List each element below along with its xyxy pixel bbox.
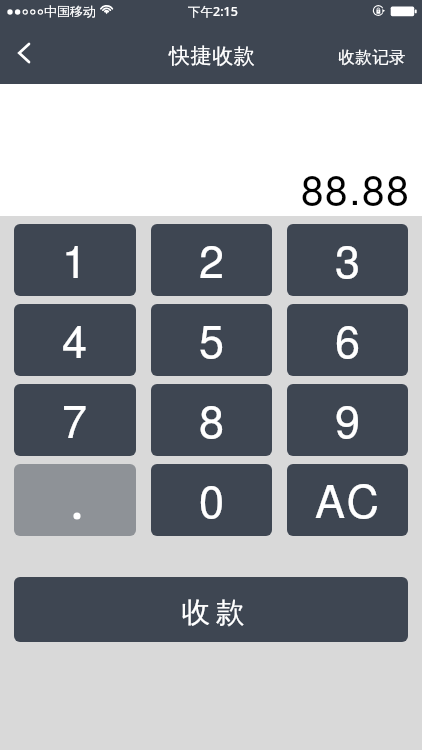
staticText: 6 xyxy=(335,306,361,370)
staticText: 2 xyxy=(199,226,225,290)
button[interactable]: 3 xyxy=(287,224,408,296)
staticText: 3 xyxy=(335,226,361,290)
staticText: AC xyxy=(315,466,382,530)
button[interactable]: 2 xyxy=(151,224,272,296)
button[interactable]: Decimal point xyxy=(14,464,136,536)
staticText: 8 xyxy=(199,386,225,450)
button[interactable]: 4 xyxy=(14,304,136,376)
button[interactable]: Back xyxy=(0,28,48,84)
staticText: 0 xyxy=(199,466,225,530)
staticText: 1 xyxy=(62,226,88,290)
button[interactable]: AC xyxy=(287,464,408,536)
staticText: 中国移动 xyxy=(44,3,96,19)
button[interactable]: 0 xyxy=(151,464,272,536)
button[interactable]: 6 xyxy=(287,304,408,376)
button[interactable]: 7 xyxy=(14,384,136,456)
staticText: 5 xyxy=(199,306,225,370)
button[interactable]: 5 xyxy=(151,304,272,376)
button[interactable]: 1 xyxy=(14,224,136,296)
staticText: 收款 xyxy=(179,595,247,631)
staticText: 7 xyxy=(62,386,88,450)
button[interactable]: 收款 xyxy=(14,577,408,642)
button[interactable]: 9 xyxy=(287,384,408,456)
staticText: 4 xyxy=(62,306,88,370)
staticText: 9 xyxy=(335,386,361,450)
button[interactable]: 收款记录 xyxy=(322,32,422,81)
button[interactable]: 8 xyxy=(151,384,272,456)
staticText: 快捷收款 xyxy=(169,43,256,69)
staticText: 88.88 xyxy=(301,159,411,217)
staticText: 收款记录 xyxy=(338,47,406,68)
staticText: 下午2:15 xyxy=(188,3,238,20)
